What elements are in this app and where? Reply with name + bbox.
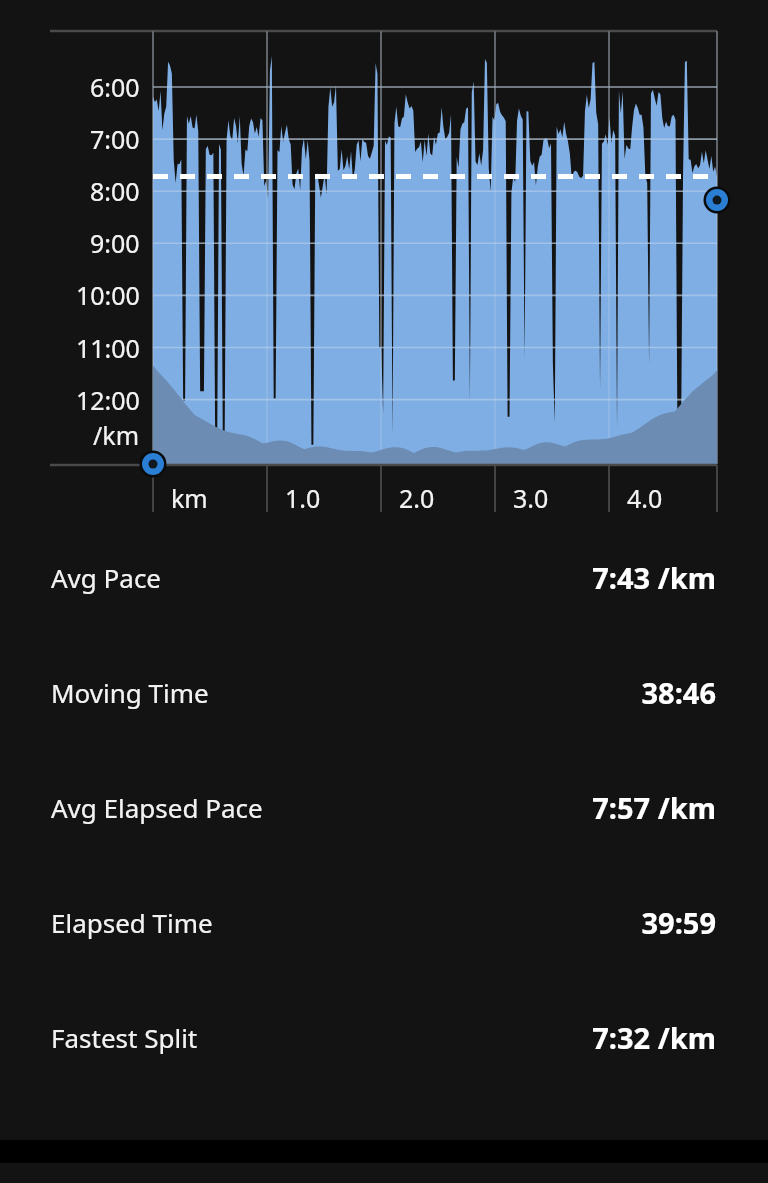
button[interactable]: Fastest Split [0,980,768,1095]
staticText: 7:57 /km [592,788,716,827]
staticText: 10:00 [76,278,140,312]
staticText: 7:00 [90,122,140,156]
button[interactable]: Pace and elevation chart [0,0,768,520]
staticText: 4.0 [627,481,663,515]
staticText: Fastest Split [51,1020,198,1055]
staticText: 8:00 [90,174,140,208]
staticText: Elapsed Time [51,905,213,940]
staticText: 1.0 [285,481,321,515]
staticText: /km [93,418,140,452]
staticText: 9:00 [90,226,140,260]
staticText: 2.0 [399,481,435,515]
staticText: 3.0 [513,481,549,515]
button[interactable]: Avg Pace [0,520,768,635]
button[interactable]: Elapsed Time [0,865,768,980]
button[interactable]: Moving Time [0,635,768,750]
staticText: 6:00 [90,70,140,104]
staticText: 12:00 [76,383,140,417]
staticText: 39:59 [641,903,716,942]
staticText: 38:46 [641,673,716,712]
staticText: 7:32 /km [592,1018,716,1057]
staticText: 7:43 /km [592,558,716,597]
staticText: Avg Elapsed Pace [51,790,263,825]
staticText: km [171,481,208,515]
staticText: Moving Time [51,675,209,710]
staticText: 11:00 [76,331,140,365]
button[interactable]: Avg Elapsed Pace [0,750,768,865]
staticText: Avg Pace [51,560,162,595]
